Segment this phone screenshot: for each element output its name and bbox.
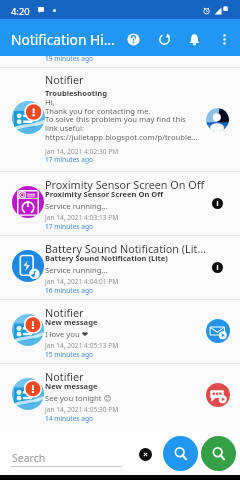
staticText: 14 minutes ago [45,414,213,423]
staticText: Service running... [45,265,213,275]
button[interactable]: Battery Sound Notification (Lit… [0,236,240,299]
staticText: Battery Sound Notification (Lite) [45,253,213,263]
staticText: link useful: [45,123,213,133]
button[interactable]: Refresh [151,26,178,53]
staticText: Hi, [45,97,213,107]
staticText: I love you ❤ [45,329,213,339]
staticText: See you tonight 😊 [45,393,213,403]
button[interactable]: Search in history [201,436,236,471]
staticText: Notifier [45,72,213,87]
staticText: Search [12,451,46,465]
staticText: 17 minutes ago [45,222,213,231]
staticText: 17 minutes ago [45,155,213,164]
staticText: Battery Sound Notification (Lit… [45,241,213,256]
staticText: Notifier [45,305,213,320]
staticText: New message [45,381,213,391]
staticText: Jan 14, 2021 4:03:13 PM [45,213,213,222]
staticText: Proximity Sensor Screen On Off [45,189,213,199]
staticText: Troubleshooting [45,88,213,98]
staticText: Notification Hi… [11,30,115,49]
staticText: 16 minutes ago [45,286,213,295]
staticText: Notifier [45,369,213,384]
staticText: To solve this problem you may find this [45,114,213,124]
staticText: 4:20 [11,5,30,18]
button[interactable]: Search [163,436,198,471]
staticText: Jan 14, 2021 4:05:30 PM [45,405,213,414]
staticText: Jan 14, 2021 4:05:13 PM [45,341,213,350]
staticText: https://julietapp.blogspot.com/p/trouble… [45,132,213,142]
button[interactable]: Notifications [181,26,208,53]
staticText: Proximity Sensor Screen On Off [45,177,213,192]
staticText: Jan 14, 2021 4:02:30 PM [45,147,213,156]
button[interactable]: Notifier [0,68,240,171]
staticText: 15 minutes ago [45,350,213,359]
staticText: 19 minutes ago [45,54,93,63]
staticText: Jan 14, 2021 4:04:01 PM [45,277,213,286]
staticText: New message [45,317,213,327]
button[interactable]: More options [211,26,238,53]
button[interactable]: Notifier [0,300,240,363]
button[interactable]: Clear search [139,448,152,461]
button[interactable]: Notifier [0,364,240,427]
button[interactable]: Proximity Sensor Screen On Off [0,172,240,235]
staticText: Thank you for contacting me. [45,106,213,116]
button[interactable]: Help [120,26,147,53]
staticText: Service running... [45,201,213,211]
